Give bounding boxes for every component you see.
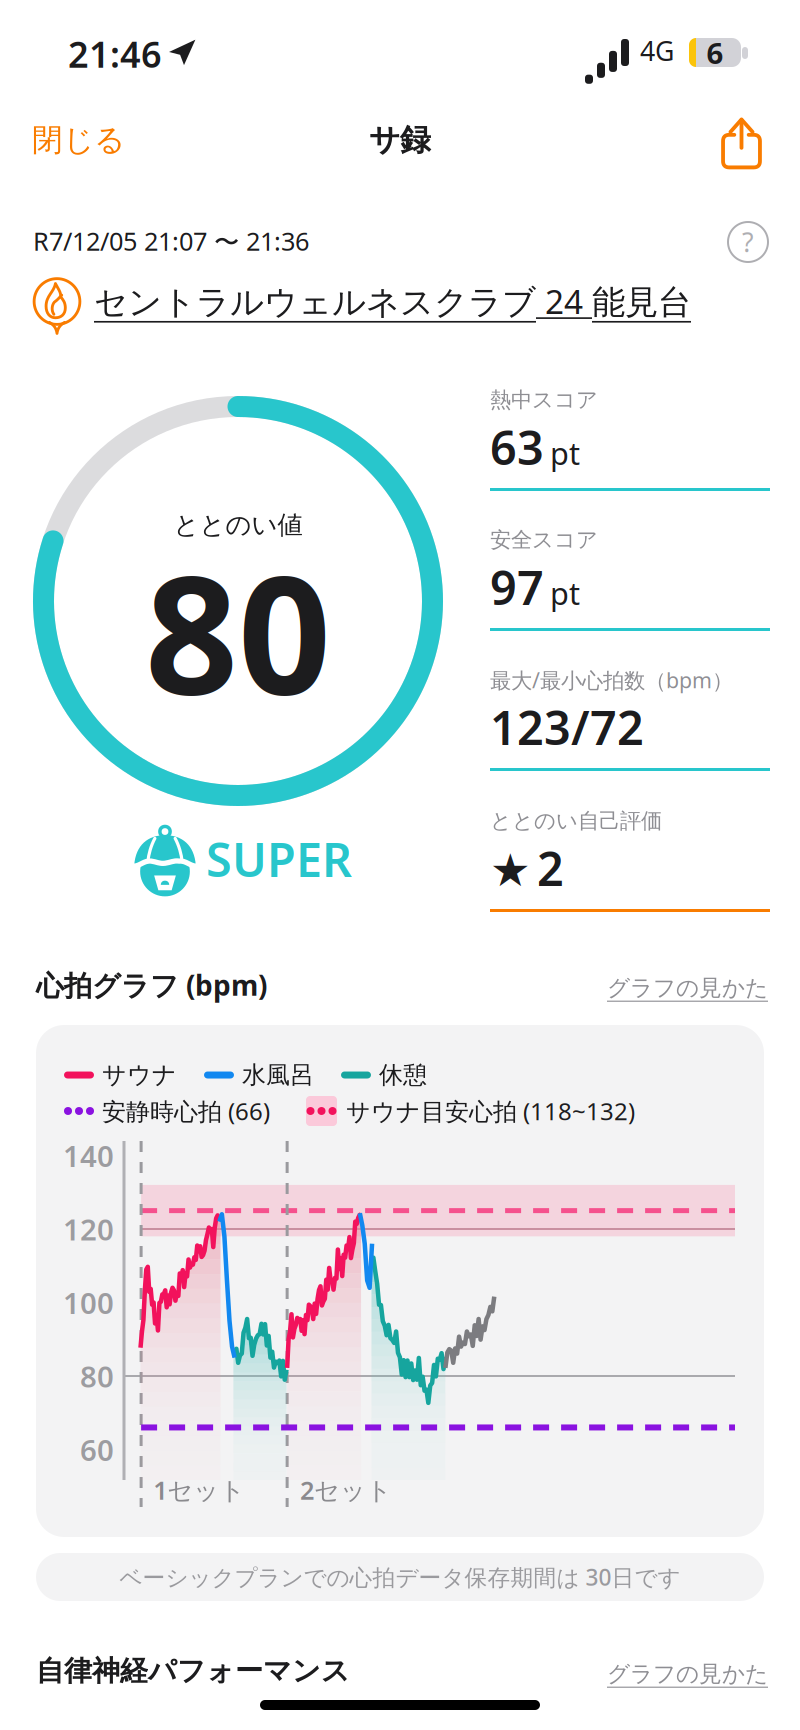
staticText: R7/12/05 21:07 〜 21:36 <box>33 224 309 258</box>
staticText: ? <box>742 224 754 260</box>
staticText: pt <box>550 433 580 474</box>
staticText: 97 <box>490 556 544 618</box>
staticText: 4G <box>640 33 674 68</box>
button[interactable]: Share <box>719 116 764 169</box>
staticText: グラフの見かた <box>607 1660 768 1688</box>
staticText: ベーシックプランでの心拍データ保存期間は 30日です <box>119 1562 680 1592</box>
button[interactable]: 閉じる <box>32 114 202 166</box>
staticText: 水風呂 <box>242 1060 314 1090</box>
staticText: セントラルウェルネスクラブ 24 能見台 <box>94 279 691 323</box>
staticText: 2セット <box>300 1473 392 1507</box>
staticText: 自律神経パフォーマンス <box>36 1654 350 1688</box>
staticText: 1セット <box>153 1473 245 1507</box>
button[interactable]: グラフの見かた <box>480 968 768 1008</box>
button[interactable]: セントラルウェルネスクラブ 24 能見台 <box>94 278 754 324</box>
staticText: SUPER <box>206 828 352 890</box>
staticText: 安全スコア <box>490 527 598 553</box>
staticText: ととのい自己評価 <box>490 808 662 834</box>
staticText: 心拍グラフ (bpm) <box>36 966 267 1004</box>
staticText: 休憩 <box>379 1060 427 1090</box>
staticText: サ録 <box>369 121 431 159</box>
staticText: 140 <box>63 1136 114 1175</box>
staticText: 2 <box>537 837 564 899</box>
staticText: ととのい値 <box>173 509 302 540</box>
staticText: 100 <box>63 1283 114 1322</box>
staticText: 80 <box>80 1356 114 1395</box>
button[interactable]: Help <box>728 222 768 262</box>
staticText: ★ <box>490 845 531 896</box>
staticText: 120 <box>63 1209 114 1248</box>
staticText: 80 <box>145 523 331 739</box>
staticText: 60 <box>80 1430 114 1469</box>
staticText: サウナ目安心拍 (118~132) <box>346 1095 635 1127</box>
staticText: 63 <box>490 416 544 478</box>
staticText: 6 <box>706 33 723 72</box>
staticText: 21:46 <box>68 30 162 78</box>
staticText: 最大/最小心拍数（bpm） <box>490 666 733 694</box>
button[interactable]: グラフの見かた <box>480 1654 768 1694</box>
staticText: 123/72 <box>490 696 644 758</box>
staticText: サウナ <box>102 1060 177 1090</box>
staticText: 熱中スコア <box>490 387 598 413</box>
staticText: 安静時心拍 (66) <box>102 1095 270 1127</box>
staticText: グラフの見かた <box>607 974 768 1002</box>
staticText: pt <box>550 573 580 614</box>
staticText: 閉じる <box>32 121 125 159</box>
